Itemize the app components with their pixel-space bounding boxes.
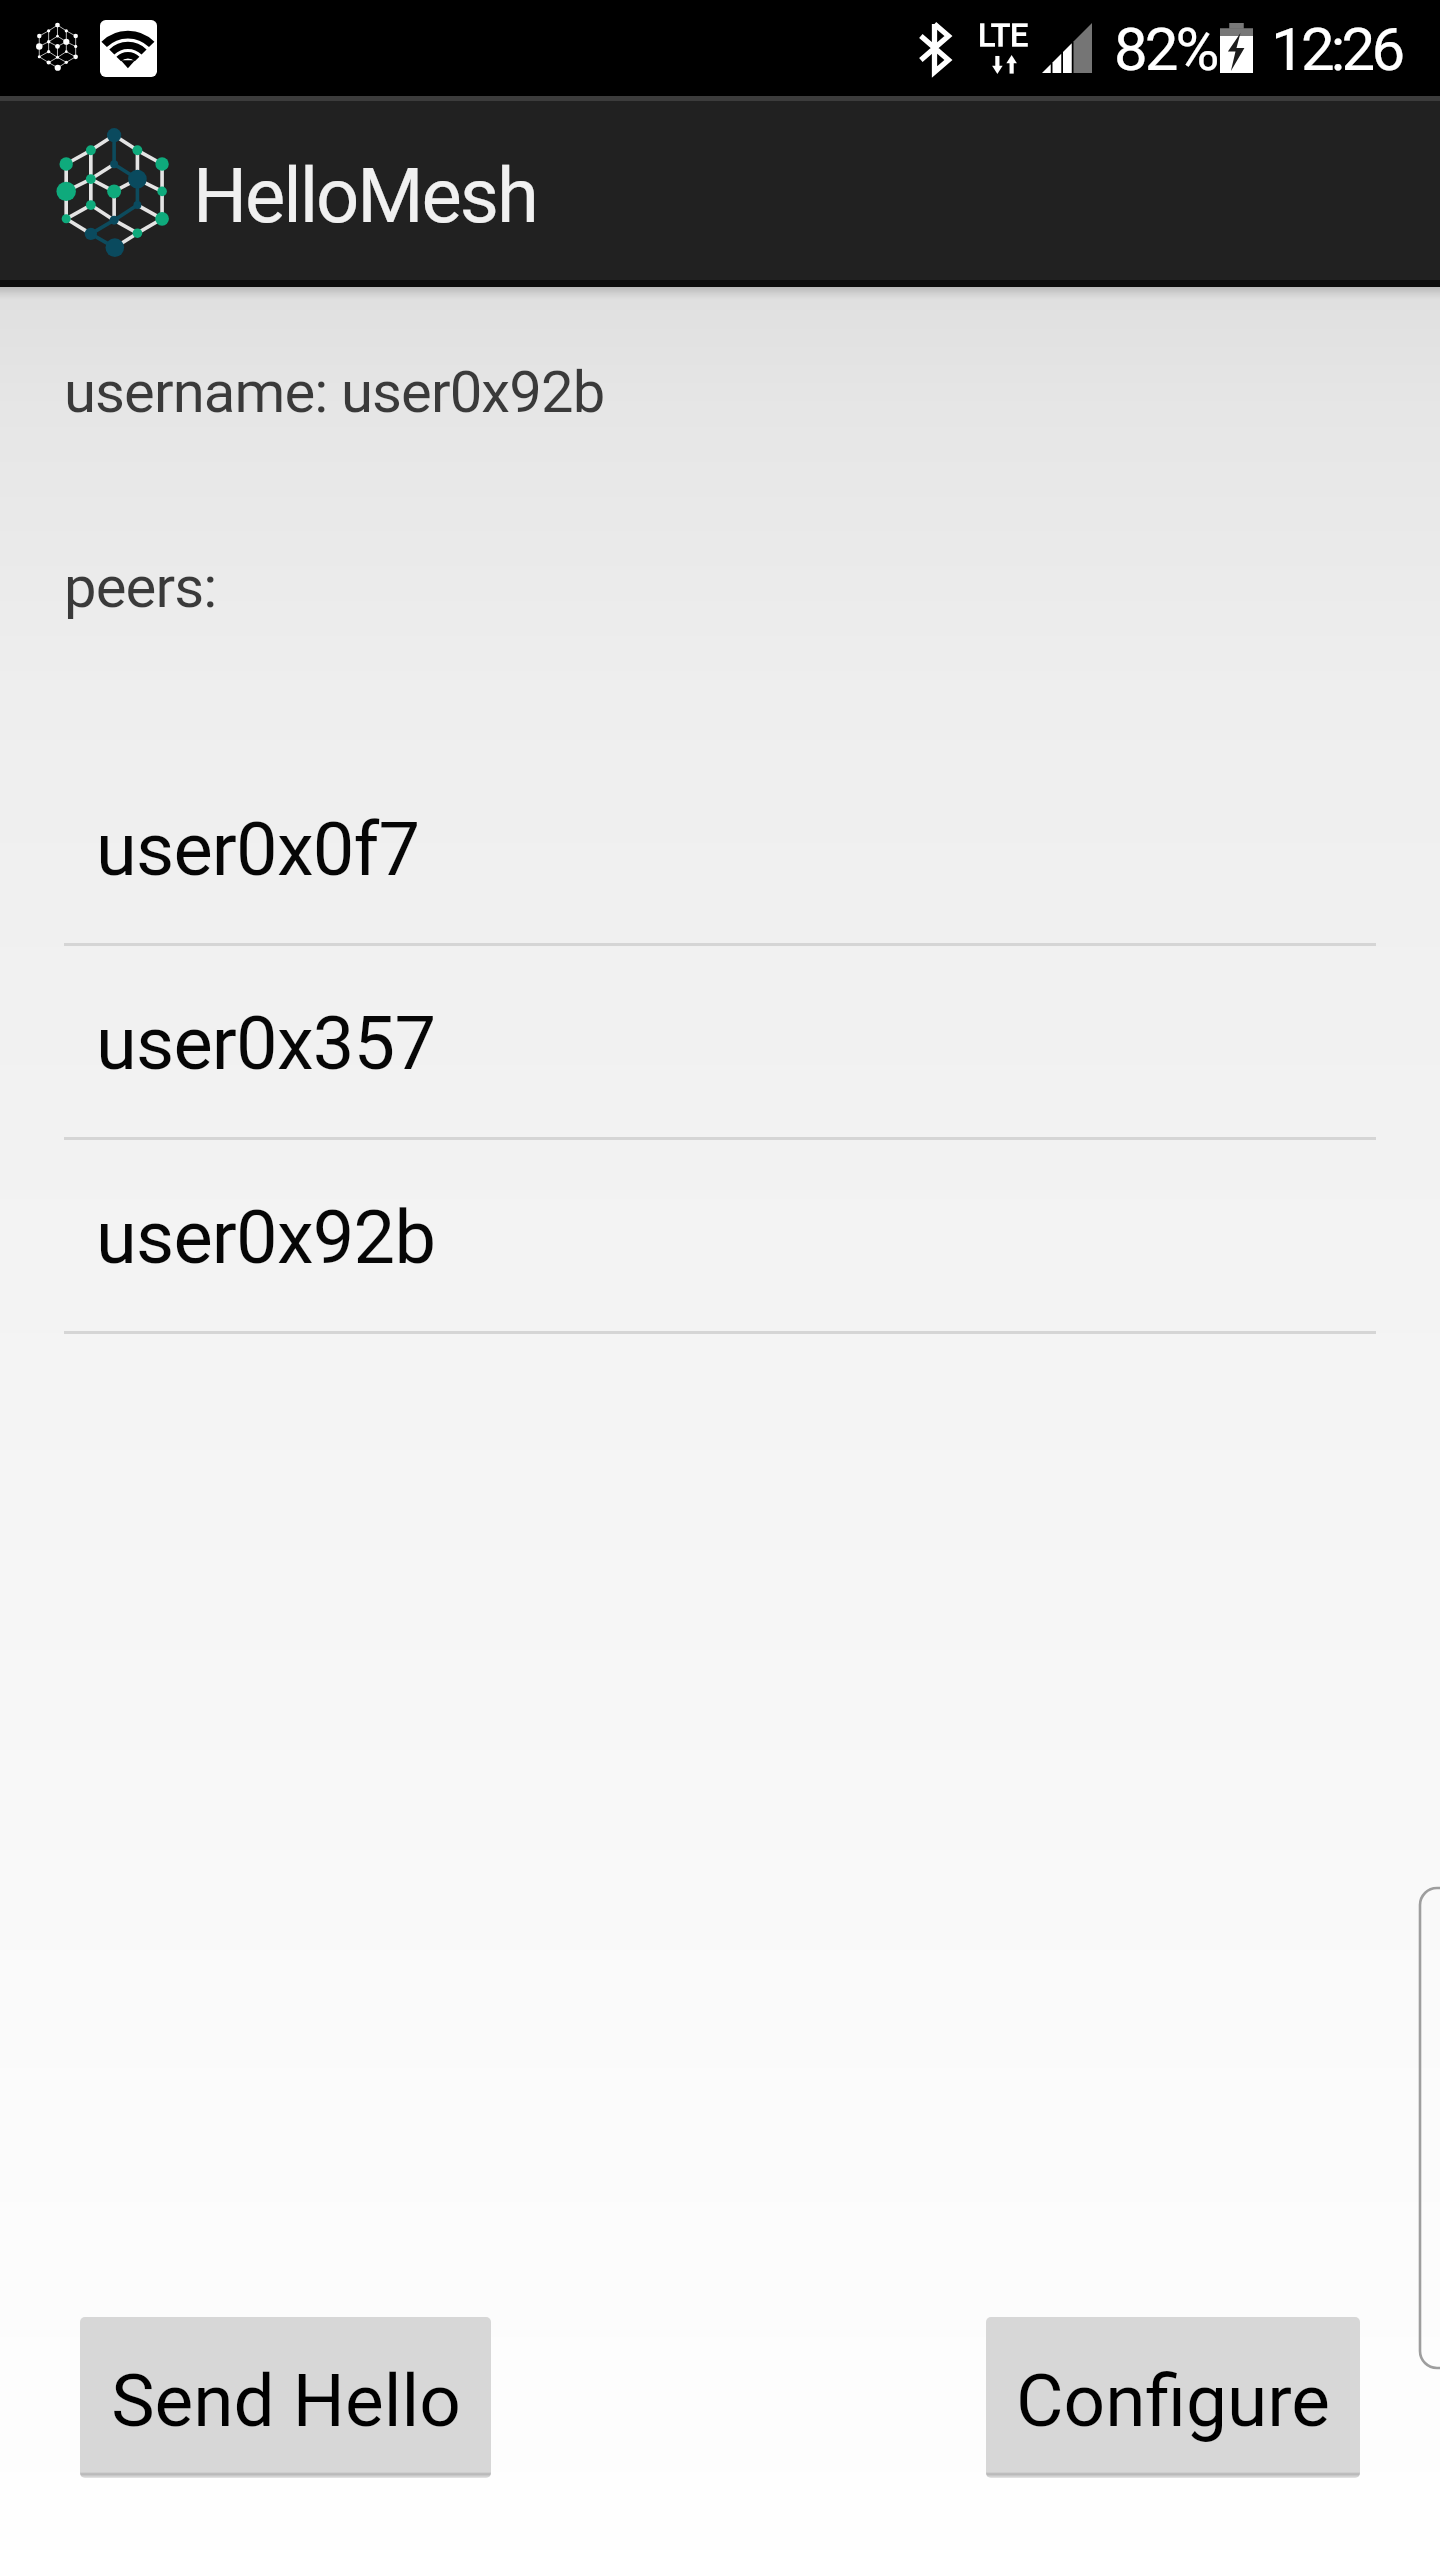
button[interactable]: Configure xyxy=(986,2317,1360,2478)
staticText: LTE xyxy=(978,16,1029,54)
other: HelloMesh notification xyxy=(32,22,84,74)
other: Wi-Fi connected xyxy=(100,20,157,77)
staticText: Configure xyxy=(1016,2358,1330,2444)
staticText: peers: xyxy=(64,553,217,621)
button[interactable]: user0x357 xyxy=(0,946,1440,1137)
staticText: user0x92b xyxy=(96,1194,436,1281)
other: Bluetooth on xyxy=(919,23,950,73)
button[interactable]: user0x92b xyxy=(0,1140,1440,1331)
staticText: user0x357 xyxy=(96,1000,436,1087)
staticText: HelloMesh xyxy=(193,151,537,240)
other: Mobile signal strength xyxy=(1042,23,1092,73)
other: Battery charging xyxy=(1220,23,1253,73)
staticText: Send Hello xyxy=(111,2358,461,2444)
staticText: 82% xyxy=(1114,14,1217,84)
button[interactable]: user0x0f7 xyxy=(0,752,1440,943)
button[interactable]: Send Hello xyxy=(80,2317,491,2478)
staticText: username: user0x92b xyxy=(64,358,605,426)
other: Mobile data activity xyxy=(989,55,1020,74)
other: HelloMesh app icon xyxy=(47,127,184,264)
staticText: user0x0f7 xyxy=(96,806,420,893)
staticText: 12:26 xyxy=(1271,14,1402,84)
